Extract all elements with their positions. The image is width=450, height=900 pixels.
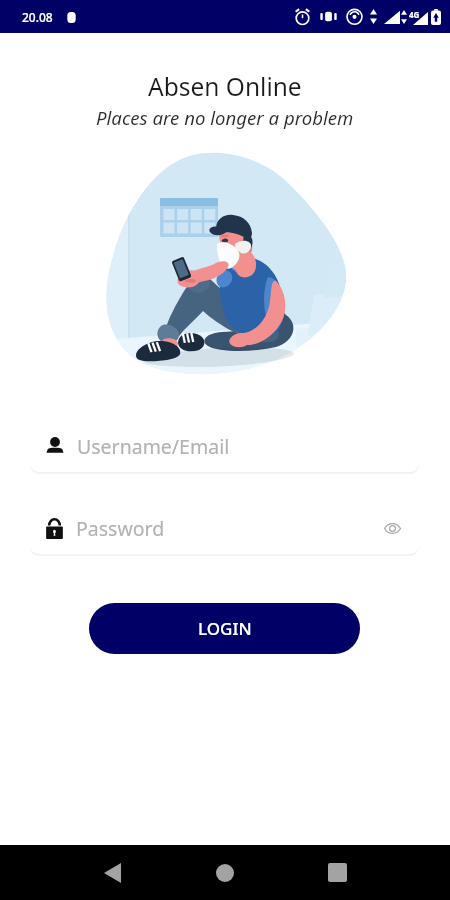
button[interactable]: Password [30,502,419,554]
button[interactable]: LOGIN [89,603,360,654]
button[interactable]: Username/Email [30,420,419,472]
staticText: 20.08 [22,9,53,25]
staticText: Places are no longer a problem [96,105,354,130]
button[interactable]: Recent apps [307,845,367,900]
button[interactable]: Home [195,845,255,900]
staticText: Username/Email [77,433,230,460]
staticText: 4G [409,9,420,20]
staticText: LOGIN [198,617,252,640]
staticText: Absen Online [148,70,302,103]
staticText: Password [76,515,165,542]
button[interactable]: Back [82,845,142,900]
